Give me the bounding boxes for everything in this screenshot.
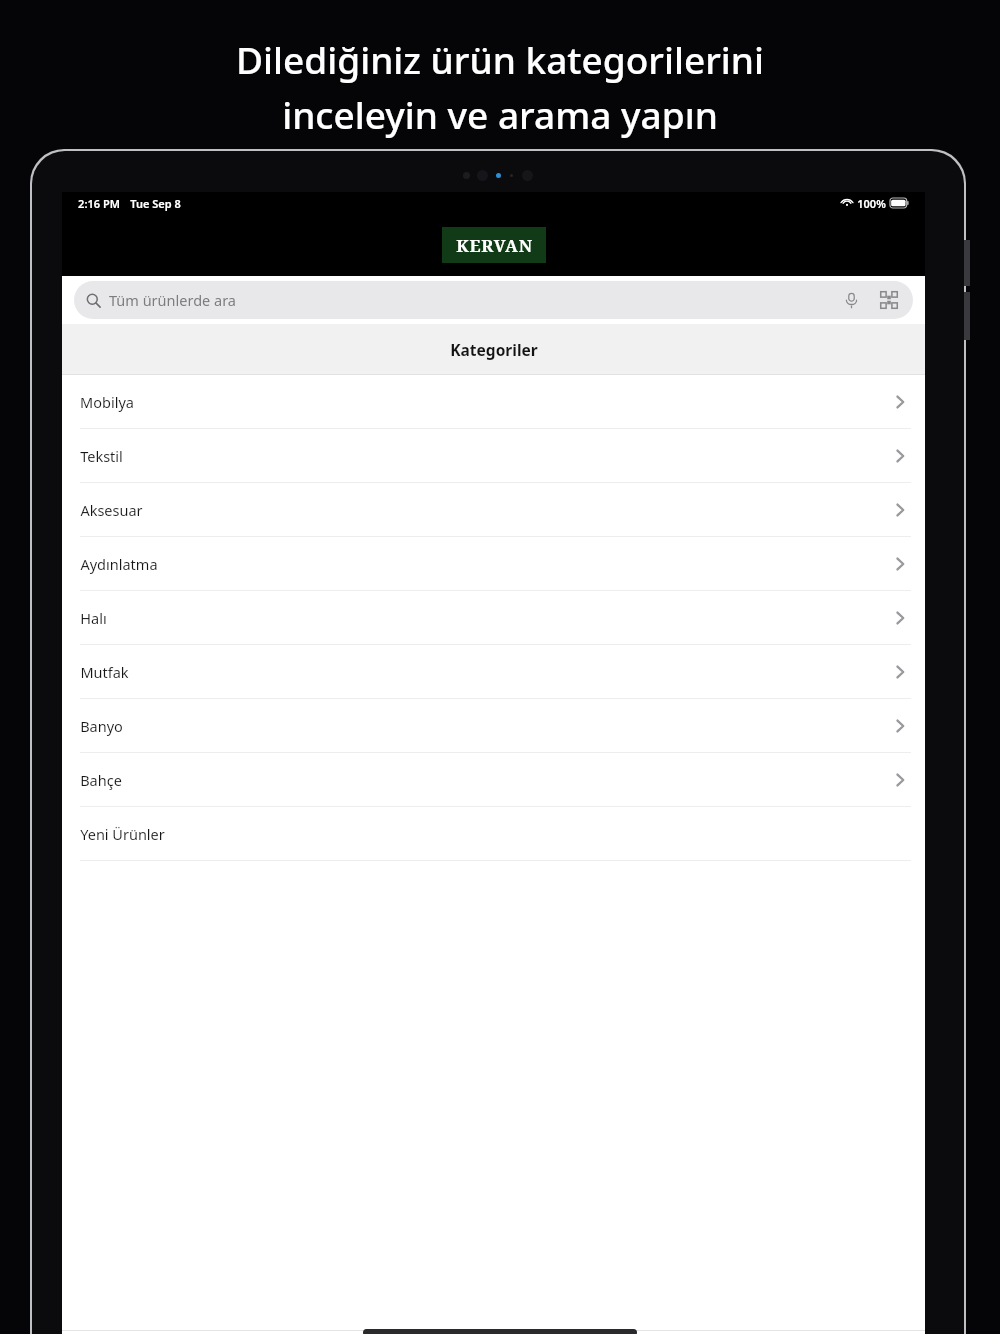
button[interactable]: Sepetim	[579, 1331, 752, 1334]
button[interactable]: Tüm ürünlerde ara	[74, 281, 913, 319]
button[interactable]: Bahçe	[62, 753, 925, 807]
button[interactable]: Halı	[62, 591, 925, 645]
staticText: Tüm ürünlerde ara	[109, 290, 236, 310]
staticText: Mobilya	[80, 392, 134, 412]
button[interactable]: Mutfak	[62, 645, 925, 699]
staticText: Aydınlatma	[80, 554, 158, 574]
button[interactable]: Sesli arama	[839, 288, 863, 312]
staticText: Kategoriler	[450, 339, 538, 360]
staticText: Yeni Ürünler	[80, 824, 165, 844]
button[interactable]: Aksesuar	[62, 483, 925, 537]
staticText: KERVAN	[456, 234, 533, 257]
button[interactable]: QR kod tara	[877, 288, 901, 312]
staticText: Bahçe	[80, 770, 122, 790]
staticText: inceleyin ve arama yapın	[282, 89, 718, 139]
button[interactable]: Mobilya	[62, 375, 925, 429]
staticText: Tue Sep 8	[130, 196, 181, 211]
button[interactable]: KERVAN	[442, 227, 546, 263]
staticText: 100%	[857, 196, 886, 211]
button[interactable]: Yeni Ürünler	[62, 807, 925, 861]
staticText: Halı	[80, 608, 107, 628]
button[interactable]: Aydınlatma	[62, 537, 925, 591]
button[interactable]: Banyo	[62, 699, 925, 753]
staticText: 2:16 PM	[78, 196, 120, 211]
staticText: Banyo	[80, 716, 123, 736]
staticText: Aksesuar	[80, 500, 143, 520]
staticText: Mutfak	[80, 662, 129, 682]
button[interactable]: Tekstil	[62, 429, 925, 483]
staticText: Tekstil	[80, 446, 123, 466]
staticText: Dilediğiniz ürün kategorilerini	[236, 34, 764, 84]
button[interactable]: Kategoriler	[234, 1331, 406, 1334]
